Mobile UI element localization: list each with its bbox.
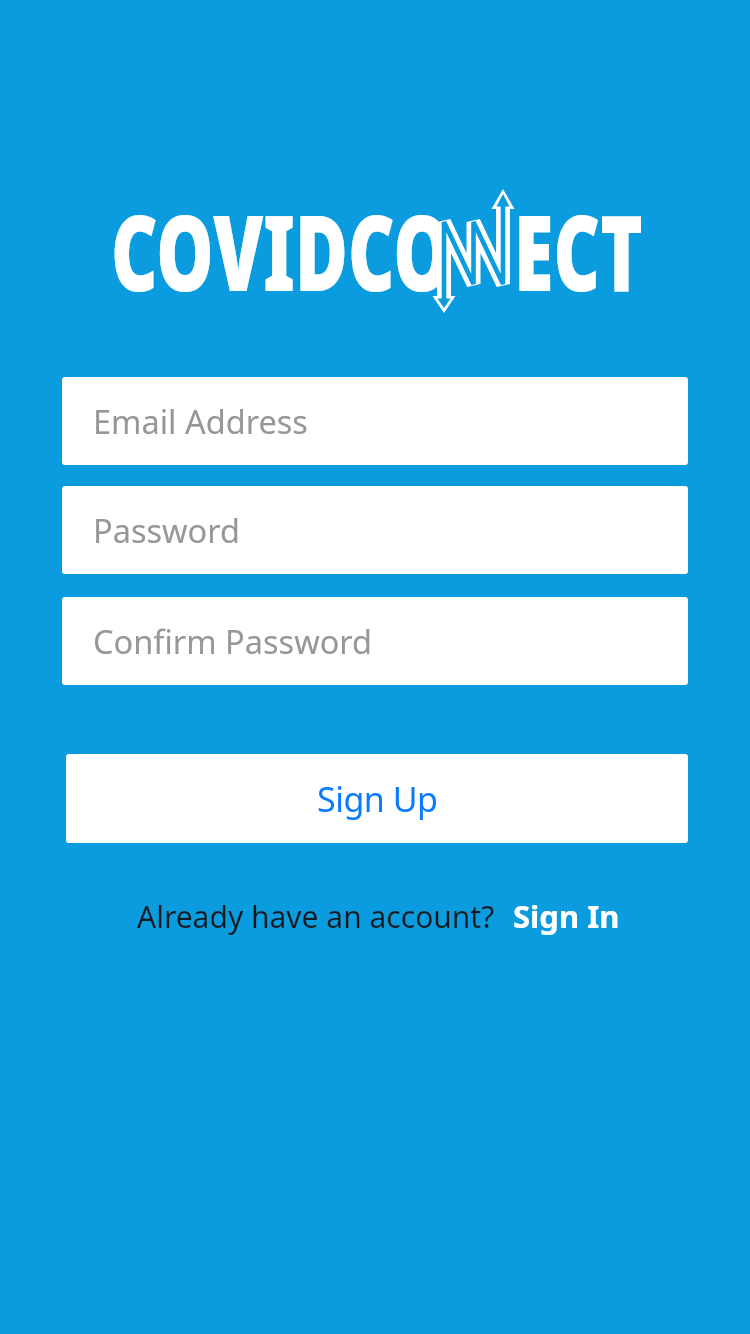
staticText: Email Address [93,399,308,443]
button[interactable]: Confirm Password [62,597,688,685]
staticText: COVIDCO [111,179,451,322]
button[interactable]: Sign In [513,895,620,937]
button[interactable]: Password [62,486,688,574]
button[interactable]: Email Address [62,377,688,465]
staticText: ECT [514,179,643,322]
staticText: Password [93,508,240,552]
button[interactable]: Sign Up [66,754,688,843]
staticText: Already have an account? [137,896,495,937]
staticText: Confirm Password [93,619,373,663]
staticText: Sign Up [317,776,438,822]
